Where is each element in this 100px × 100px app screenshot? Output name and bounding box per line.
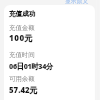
staticText: 57.42元	[9, 85, 38, 96]
staticText: 显示原文	[65, 0, 89, 4]
staticText: 可用余额	[9, 75, 35, 83]
staticText: 充值金额	[9, 24, 35, 32]
staticText: 100元	[9, 32, 34, 43]
button[interactable]	[4, 44, 95, 71]
button[interactable]: 显示原文	[63, 0, 89, 5]
button[interactable]	[4, 20, 95, 44]
button[interactable]	[4, 5, 95, 100]
staticText: 充值成功	[9, 10, 36, 18]
button[interactable]	[4, 71, 95, 95]
staticText: 06日01时34分	[9, 61, 53, 71]
staticText: 充值时间	[9, 51, 35, 59]
